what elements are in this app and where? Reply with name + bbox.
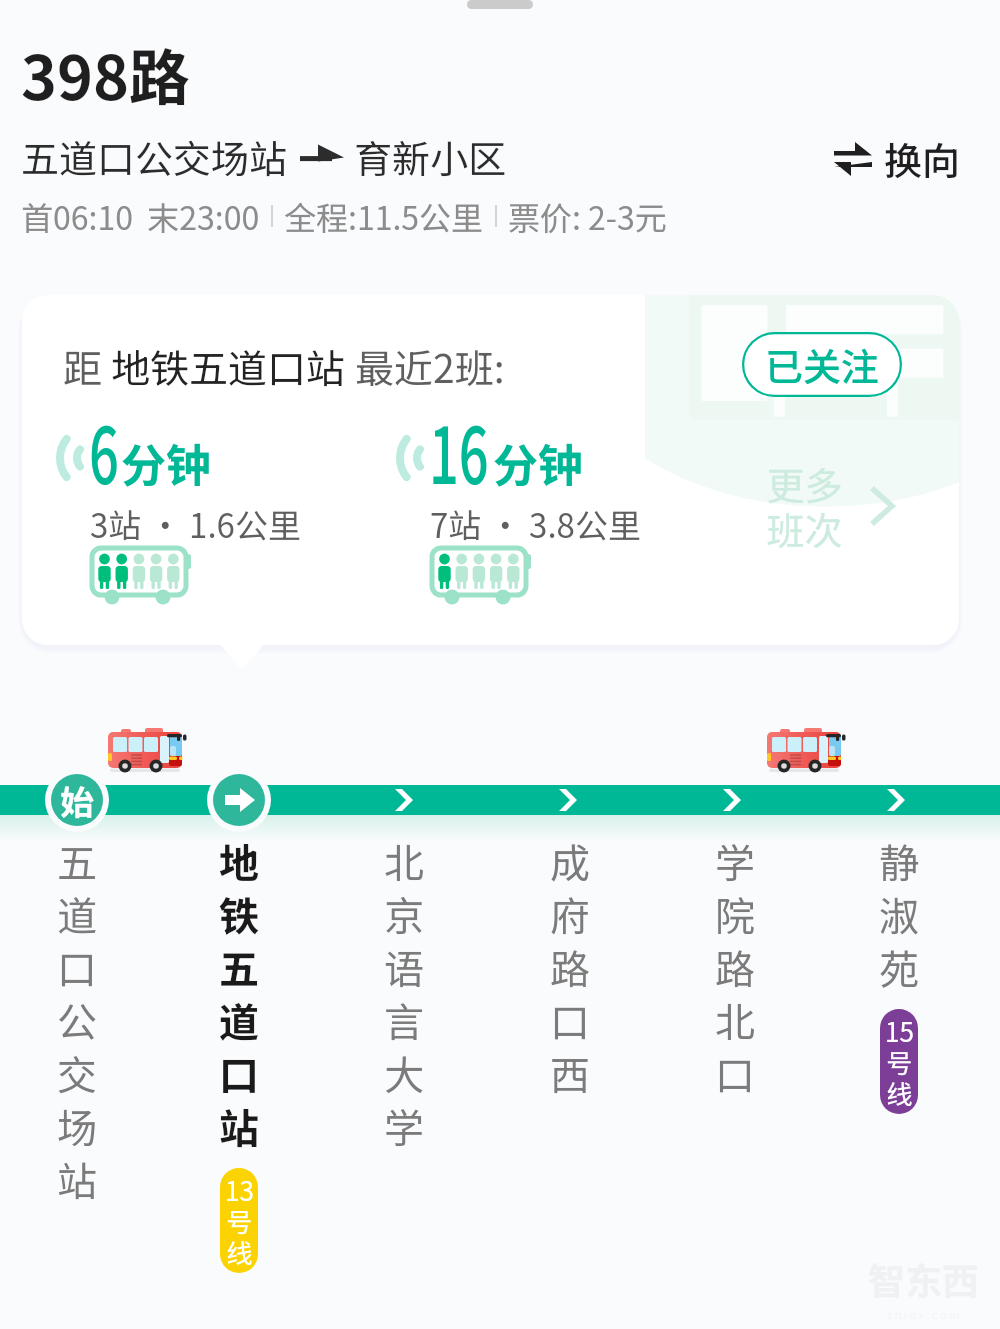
staticText: 全程:11.5公里	[284, 193, 484, 239]
button[interactable]: 静 淑 苑	[844, 832, 954, 1114]
staticText: 3站 · 1.6公里	[90, 500, 301, 548]
button[interactable]: 五 道 口 公 交 场 站	[22, 832, 132, 1208]
staticText: 始	[60, 776, 94, 825]
staticText: 首06:10 末23:00	[21, 193, 260, 239]
staticText: 16	[429, 395, 489, 506]
staticText: 五道口公交场站	[21, 129, 288, 184]
staticText: 更多 班次	[766, 456, 843, 556]
staticText: 地 铁 五 道 口 站	[219, 832, 259, 1155]
staticText: 成 府 路 口 西	[550, 832, 590, 1102]
button[interactable]: 学 院 路 北 口	[680, 832, 790, 1102]
staticText: 学 院 路 北 口	[715, 832, 755, 1102]
staticText: 15 号 线	[885, 1012, 914, 1111]
button[interactable]: 北 京 语 言 大 学	[349, 832, 459, 1155]
staticText: 6	[89, 395, 119, 506]
button[interactable]: 成 府 路 口 西	[515, 832, 625, 1102]
staticText: 静 淑 苑	[879, 832, 919, 996]
staticText: 北 京 语 言 大 学	[384, 832, 424, 1155]
staticText: 育新小区	[354, 129, 507, 184]
staticText: 智东西	[868, 1252, 979, 1306]
button[interactable]: 地 铁 五 道 口 站	[184, 832, 294, 1273]
staticText: 分钟	[121, 430, 212, 495]
staticText: 票价: 2-3元	[508, 193, 667, 239]
staticText: 7站 · 3.8公里	[430, 500, 641, 548]
staticText: 13 号 线	[225, 1171, 254, 1270]
staticText: 398路	[21, 29, 190, 117]
staticText: 已关注	[765, 337, 880, 392]
staticText: 分钟	[493, 430, 584, 495]
staticText: 换向	[884, 131, 961, 186]
button[interactable]: 更多 班次	[766, 456, 895, 556]
staticText: 距	[63, 338, 103, 394]
button[interactable]: 已关注	[742, 332, 902, 397]
staticText: 最近2班:	[355, 338, 505, 394]
staticText: 地铁五道口站	[111, 338, 346, 394]
staticText: 五 道 口 公 交 场 站	[57, 832, 97, 1208]
button[interactable]: 起点站	[47, 770, 107, 830]
button[interactable]: 换向	[830, 125, 965, 192]
